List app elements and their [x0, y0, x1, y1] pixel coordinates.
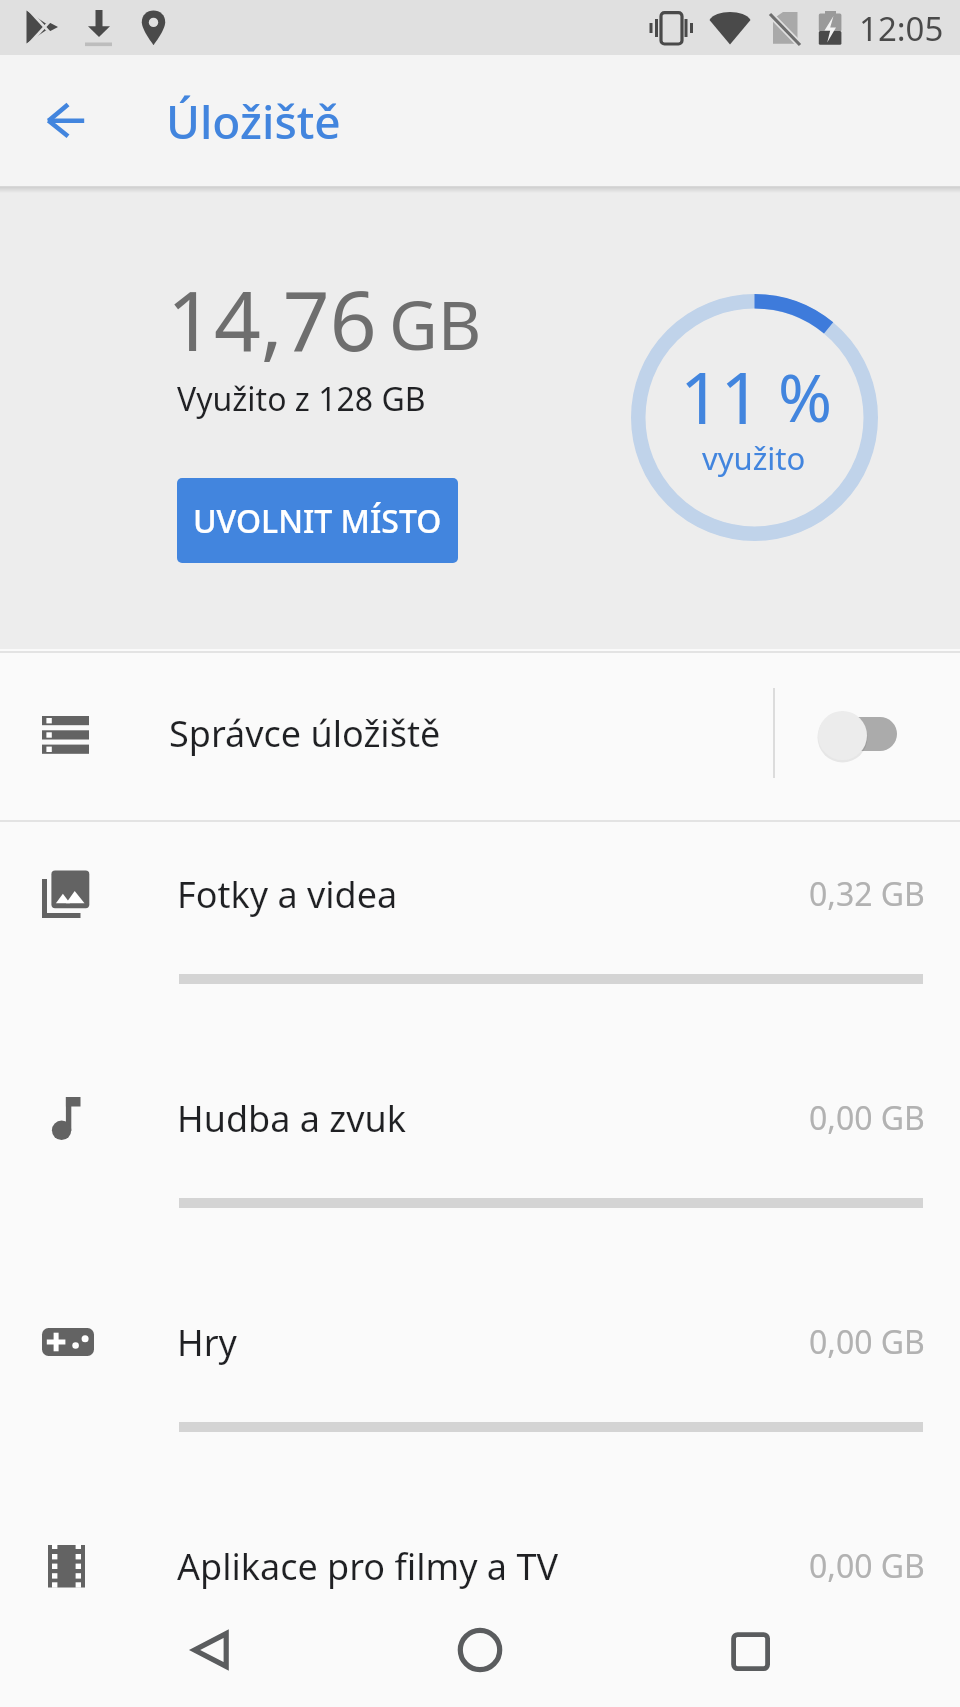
button[interactable]: Správce úložiště — [0, 653, 960, 820]
staticText: Aplikace pro filmy a TV — [177, 1542, 559, 1591]
staticText: 12:05 — [859, 6, 944, 51]
button[interactable]: Back — [164, 1607, 258, 1701]
staticText: 0,00 GB — [809, 1544, 925, 1588]
button[interactable]: UVOLNIT MÍSTO — [177, 478, 458, 563]
staticText: GB — [389, 278, 482, 369]
staticText: Fotky a videa — [177, 870, 398, 919]
staticText: UVOLNIT MÍSTO — [193, 499, 442, 543]
staticText: využito — [702, 437, 806, 479]
button[interactable]: Recent apps — [703, 1607, 797, 1701]
staticText: 11 — [680, 348, 762, 445]
staticText: Správce úložiště — [169, 709, 441, 758]
staticText: Úložiště — [166, 90, 341, 153]
staticText: 0,00 GB — [809, 1320, 925, 1364]
staticText: 0,00 GB — [809, 1096, 925, 1140]
button[interactable]: Home — [433, 1603, 527, 1697]
button[interactable]: Hudba a zvuk — [0, 1046, 960, 1270]
button[interactable]: Fotky a videa — [0, 822, 960, 1046]
staticText: % — [778, 353, 833, 442]
button[interactable]: Toggle storage manager — [790, 653, 960, 820]
button[interactable]: Hry — [0, 1270, 960, 1494]
staticText: 0,32 GB — [809, 872, 925, 916]
staticText: 14,76 — [167, 263, 377, 375]
staticText: Hry — [177, 1318, 237, 1367]
staticText: Využito z 128 GB — [177, 377, 426, 421]
staticText: Hudba a zvuk — [177, 1094, 406, 1143]
button[interactable]: Aplikace pro filmy a TV — [0, 1494, 960, 1707]
button[interactable]: Navigate up — [30, 85, 102, 157]
